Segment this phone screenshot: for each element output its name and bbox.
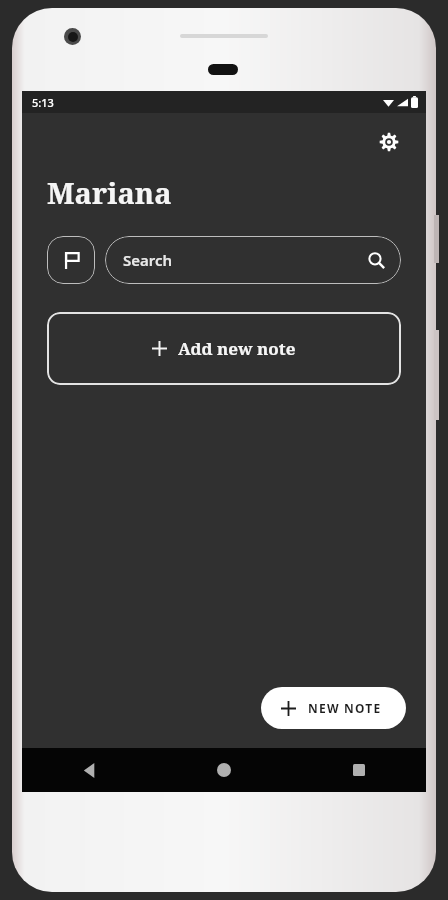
staticText: NEW NOTE <box>308 700 382 716</box>
button[interactable]: Back <box>22 748 156 792</box>
button[interactable]: Settings <box>372 125 406 159</box>
staticText: 5:13 <box>32 95 54 110</box>
button[interactable]: Recents <box>291 748 426 792</box>
button[interactable]: Flagged notes <box>47 236 95 284</box>
button[interactable]: Home <box>156 748 291 792</box>
button[interactable]: NEW NOTE <box>261 687 406 729</box>
button[interactable]: Add new note <box>47 312 401 385</box>
staticText: Mariana <box>47 173 172 212</box>
staticText: Search <box>123 250 368 270</box>
button[interactable]: Search <box>105 236 401 284</box>
staticText: Add new note <box>178 337 296 360</box>
